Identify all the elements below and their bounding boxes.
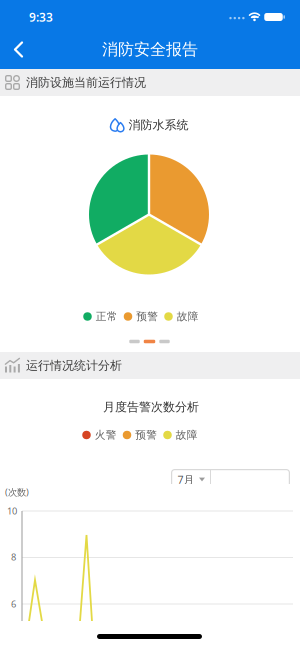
staticText: 月度告警次数分析 [103, 400, 199, 414]
staticText: 运行情况统计分析 [26, 358, 122, 373]
staticText: 故障 [177, 310, 199, 323]
staticText: 7月 [177, 472, 194, 487]
button[interactable]: 故障 [164, 310, 199, 323]
button[interactable]: Back [7, 39, 29, 60]
staticText: 消防设施当前运行情况 [26, 75, 146, 90]
staticText: 10 [7, 505, 17, 517]
staticText: 正常 [96, 310, 118, 323]
staticText: (次数) [5, 486, 29, 498]
staticText: 9:33 [29, 9, 53, 25]
staticText: 8 [11, 551, 16, 563]
button[interactable]: 预警 [123, 428, 157, 441]
staticText: 火警 [95, 428, 117, 441]
button[interactable]: 正常 [83, 310, 118, 323]
staticText: 预警 [136, 310, 158, 323]
staticText: 消防水系统 [128, 118, 188, 132]
button[interactable]: Select month [171, 469, 290, 490]
button[interactable]: Page 3 [159, 340, 170, 343]
button[interactable]: Page 1 [129, 340, 140, 343]
staticText: 故障 [176, 428, 198, 441]
staticText: 消防安全报告 [102, 40, 198, 59]
staticText: 预警 [135, 428, 157, 441]
button[interactable]: 故障 [163, 428, 198, 441]
button[interactable]: 预警 [124, 310, 158, 323]
staticText: 6 [11, 598, 16, 610]
button[interactable]: 火警 [82, 428, 117, 441]
